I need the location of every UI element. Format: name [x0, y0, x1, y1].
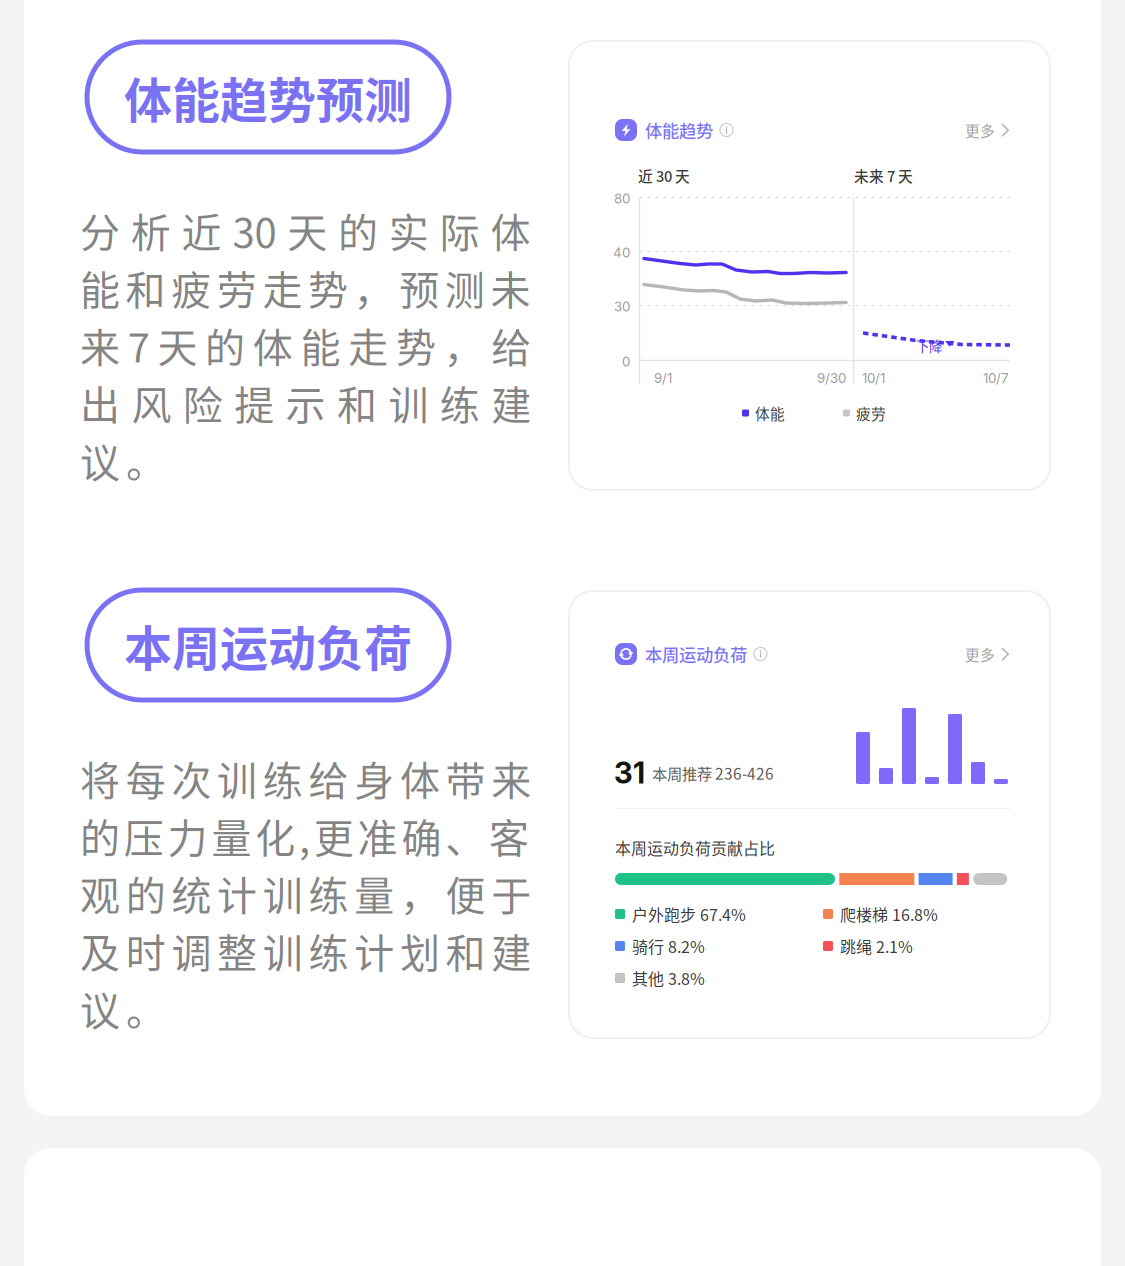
staticText: 练	[308, 921, 348, 979]
staticText: 压	[124, 806, 164, 864]
staticText: 化	[255, 806, 295, 864]
staticText: 的	[126, 864, 166, 922]
staticText: 和	[446, 921, 486, 979]
staticText: 的	[338, 201, 378, 259]
staticText: 来	[80, 316, 120, 374]
staticText: 实	[389, 201, 429, 259]
staticText: 训	[388, 373, 428, 431]
staticText: 将	[80, 749, 120, 807]
staticText: ,	[299, 806, 310, 864]
staticText: 更多	[965, 643, 995, 665]
staticText: 每	[126, 749, 166, 807]
staticText: 训	[263, 921, 303, 979]
staticText: 疲劳	[856, 402, 886, 424]
staticText: 9/30	[817, 370, 846, 386]
staticText: 。	[126, 431, 166, 489]
staticText: 更多	[965, 119, 995, 141]
staticText: 本周运动负荷	[645, 641, 747, 667]
staticText: 走	[262, 258, 302, 316]
staticText: 天	[157, 316, 197, 374]
staticText: 计	[354, 921, 394, 979]
staticText: 整	[217, 921, 257, 979]
staticText: 本周推荐 236-426	[652, 762, 774, 784]
staticText: 疲	[171, 258, 211, 316]
staticText: 出	[80, 373, 120, 431]
staticText: 建	[491, 373, 531, 431]
staticText: 势	[308, 258, 348, 316]
staticText: 际	[440, 201, 480, 259]
staticText: ，	[354, 258, 394, 316]
staticText: 给	[308, 749, 348, 807]
staticText: 量	[211, 806, 251, 864]
staticText: 近	[182, 201, 222, 259]
staticText: 便	[446, 864, 486, 922]
staticText: 能	[80, 258, 120, 316]
button[interactable]: 更多	[965, 643, 1010, 665]
staticText: 来	[491, 749, 531, 807]
staticText: 身	[354, 749, 394, 807]
staticText: 及	[80, 921, 120, 979]
staticText: 练	[308, 864, 348, 922]
staticText: 未	[490, 258, 530, 316]
staticText: 势	[396, 316, 436, 374]
staticText: 10/7	[983, 370, 1009, 386]
staticText: 劳	[217, 258, 257, 316]
staticText: 30	[232, 201, 276, 259]
staticText: 分	[80, 201, 120, 259]
staticText: 下降	[916, 336, 942, 355]
staticText: 观	[80, 864, 120, 922]
staticText: 统	[171, 864, 211, 922]
staticText: 量	[354, 864, 394, 922]
staticText: 险	[183, 373, 223, 431]
staticText: 析	[131, 201, 171, 259]
staticText: 的	[80, 806, 120, 864]
staticText: 走	[348, 316, 388, 374]
staticText: 其他 3.8%	[632, 966, 705, 990]
staticText: 0	[622, 353, 630, 370]
button[interactable]: 更多	[965, 119, 1010, 141]
staticText: 确	[401, 806, 441, 864]
staticText: 时	[126, 921, 166, 979]
staticText: 示	[286, 373, 326, 431]
staticText: 。	[126, 979, 166, 1037]
staticText: 准	[358, 806, 398, 864]
staticText: 于	[491, 864, 531, 922]
staticText: 更	[314, 806, 354, 864]
staticText: 体	[400, 749, 440, 807]
staticText: 力	[168, 806, 208, 864]
staticText: 计	[217, 864, 257, 922]
staticText: 40	[613, 244, 630, 261]
staticText: 骑行 8.2%	[632, 934, 705, 958]
staticText: 天	[287, 201, 327, 259]
staticText: 31	[614, 755, 645, 790]
staticText: 和	[337, 373, 377, 431]
staticText: 次	[171, 749, 211, 807]
staticText: 客	[489, 806, 529, 864]
staticText: 未来 7 天	[854, 165, 913, 186]
staticText: 10/1	[862, 370, 885, 386]
staticText: 9/1	[654, 370, 672, 386]
staticText: 体	[253, 316, 293, 374]
staticText: 近 30 天	[638, 165, 690, 186]
button[interactable]: 体能趋势预测	[87, 42, 449, 152]
staticText: 和	[126, 258, 166, 316]
staticText: 给	[491, 316, 531, 374]
staticText: 练	[440, 373, 480, 431]
staticText: 划	[400, 921, 440, 979]
staticText: 带	[446, 749, 486, 807]
staticText: 测	[445, 258, 485, 316]
staticText: ，	[444, 316, 484, 374]
button[interactable]: 本周运动负荷	[87, 590, 449, 700]
staticText: 预	[399, 258, 439, 316]
staticText: 能	[300, 316, 340, 374]
staticText: 调	[171, 921, 211, 979]
staticText: 体能趋势	[645, 117, 713, 143]
staticText: 体	[490, 201, 530, 259]
staticText: 7	[128, 316, 150, 374]
staticText: 体能趋势预测	[124, 62, 412, 132]
staticText: 建	[491, 921, 531, 979]
staticText: 30	[614, 298, 630, 315]
staticText: 体能	[755, 402, 785, 424]
staticText: ，	[400, 864, 440, 922]
staticText: 户外跑步 67.4%	[632, 902, 746, 926]
